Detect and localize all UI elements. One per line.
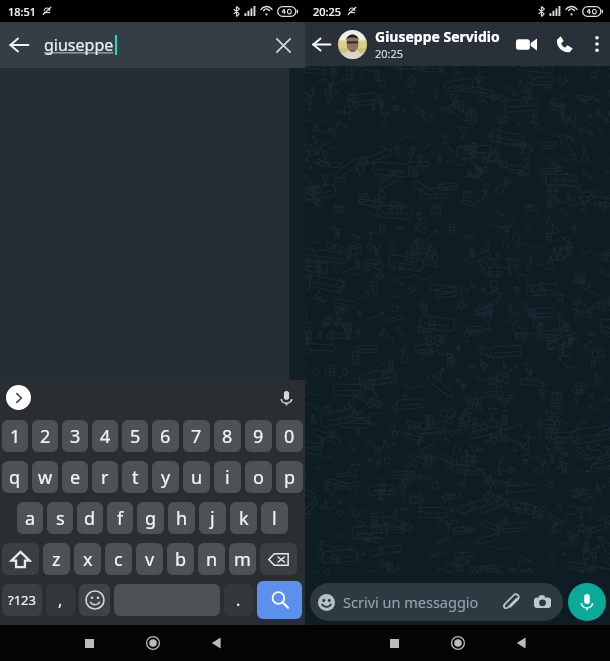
button[interactable]: o bbox=[245, 461, 272, 493]
button[interactable]: s bbox=[47, 502, 73, 534]
button[interactable]: Shift bbox=[2, 543, 39, 575]
button[interactable]: t bbox=[122, 461, 148, 493]
button[interactable]: Back bbox=[305, 22, 337, 66]
button[interactable]: 6 bbox=[152, 420, 179, 452]
button[interactable]: l bbox=[261, 502, 288, 534]
staticText: ?123 bbox=[8, 591, 36, 609]
staticText: y bbox=[161, 465, 171, 490]
button[interactable]: Record voice message bbox=[568, 583, 606, 621]
staticText: 7 bbox=[191, 424, 202, 449]
staticText: giuseppe bbox=[44, 34, 114, 56]
staticText: 20:25 bbox=[313, 4, 342, 19]
button[interactable]: 8 bbox=[214, 420, 241, 452]
button[interactable]: z bbox=[43, 543, 70, 575]
staticText: 20:25 bbox=[375, 46, 404, 61]
button[interactable]: Emoji bbox=[310, 583, 563, 621]
button[interactable]: b bbox=[167, 543, 194, 575]
button[interactable]: q bbox=[2, 461, 28, 493]
staticText: f bbox=[117, 506, 124, 531]
button[interactable]: j bbox=[199, 502, 226, 534]
button[interactable]: c bbox=[105, 543, 132, 575]
button[interactable]: Recents bbox=[363, 625, 426, 661]
staticText: d bbox=[84, 506, 96, 531]
button[interactable]: Expand toolbar bbox=[6, 385, 31, 410]
button[interactable]: Clear search bbox=[261, 22, 305, 68]
staticText: 1 bbox=[10, 424, 21, 449]
button[interactable]: Home bbox=[121, 625, 184, 661]
button[interactable]: Backspace bbox=[260, 543, 297, 575]
button[interactable]: x bbox=[74, 543, 101, 575]
button[interactable]: Space bbox=[114, 584, 220, 616]
button[interactable]: 1 bbox=[2, 420, 28, 452]
staticText: z bbox=[52, 547, 61, 572]
staticText: Scrivi un messaggio bbox=[343, 592, 479, 612]
button[interactable]: p bbox=[276, 461, 303, 493]
staticText: 6 bbox=[160, 424, 171, 449]
button[interactable]: . bbox=[224, 584, 253, 616]
staticText: b bbox=[175, 547, 187, 572]
button[interactable]: Back bbox=[489, 625, 552, 661]
button[interactable]: 4 bbox=[92, 420, 118, 452]
staticText: v bbox=[145, 547, 155, 572]
button[interactable]: 0 bbox=[276, 420, 303, 452]
button[interactable]: m bbox=[229, 543, 256, 575]
button[interactable]: v bbox=[136, 543, 163, 575]
staticText: k bbox=[239, 506, 249, 531]
button[interactable]: More options bbox=[583, 22, 610, 66]
staticText: 0 bbox=[284, 424, 295, 449]
button[interactable]: k bbox=[230, 502, 257, 534]
button[interactable]: Contact photo bbox=[338, 30, 367, 59]
staticText: h bbox=[176, 506, 188, 531]
button[interactable]: d bbox=[77, 502, 103, 534]
staticText: 9 bbox=[253, 424, 264, 449]
button[interactable]: Home bbox=[426, 625, 489, 661]
staticText: 3 bbox=[70, 424, 81, 449]
button[interactable]: Voice input bbox=[273, 385, 299, 411]
button[interactable]: Recents bbox=[58, 625, 121, 661]
button[interactable]: Back bbox=[184, 625, 247, 661]
staticText: s bbox=[56, 506, 65, 531]
staticText: m bbox=[234, 547, 251, 572]
button[interactable]: ?123 bbox=[2, 584, 42, 616]
button[interactable]: Video call bbox=[507, 22, 545, 66]
staticText: , bbox=[58, 589, 63, 611]
staticText: Giuseppe Servidio bbox=[375, 27, 500, 46]
button[interactable]: i bbox=[214, 461, 241, 493]
button[interactable]: 2 bbox=[32, 420, 58, 452]
button[interactable]: Back bbox=[0, 22, 305, 68]
staticText: r bbox=[101, 465, 109, 490]
button[interactable]: Camera bbox=[534, 594, 551, 611]
button[interactable]: Search bbox=[257, 581, 302, 619]
button[interactable]: u bbox=[183, 461, 210, 493]
button[interactable]: e bbox=[62, 461, 88, 493]
button[interactable]: Emoji bbox=[79, 584, 110, 616]
staticText: 4 bbox=[100, 424, 111, 449]
staticText: 18:51 bbox=[8, 4, 37, 19]
staticText: . bbox=[236, 589, 241, 611]
button[interactable]: a bbox=[17, 502, 43, 534]
button[interactable]: 5 bbox=[122, 420, 148, 452]
button[interactable]: 7 bbox=[183, 420, 210, 452]
staticText: 2 bbox=[40, 424, 51, 449]
staticText: t bbox=[132, 465, 139, 490]
button[interactable]: n bbox=[198, 543, 225, 575]
button[interactable]: y bbox=[152, 461, 179, 493]
staticText: e bbox=[70, 465, 81, 490]
staticText: u bbox=[191, 465, 203, 490]
button[interactable]: h bbox=[168, 502, 195, 534]
button[interactable]: , bbox=[46, 584, 75, 616]
button[interactable]: w bbox=[32, 461, 58, 493]
staticText: o bbox=[253, 465, 264, 490]
staticText: 5 bbox=[130, 424, 141, 449]
button[interactable]: Emoji bbox=[318, 594, 335, 611]
button[interactable]: Back bbox=[0, 22, 38, 68]
button[interactable]: 3 bbox=[62, 420, 88, 452]
button[interactable]: 9 bbox=[245, 420, 272, 452]
staticText: n bbox=[206, 547, 218, 572]
staticText: x bbox=[83, 547, 93, 572]
button[interactable]: f bbox=[107, 502, 133, 534]
button[interactable]: Attach bbox=[503, 594, 520, 611]
button[interactable]: g bbox=[137, 502, 164, 534]
button[interactable]: Voice call bbox=[545, 22, 583, 66]
button[interactable]: r bbox=[92, 461, 118, 493]
